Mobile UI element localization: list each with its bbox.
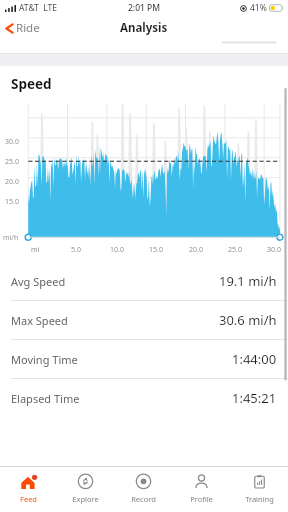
staticText: 15.0 (149, 245, 163, 255)
button[interactable]: Profile (172, 467, 230, 512)
staticText: Training (245, 494, 274, 504)
button[interactable]: Explore (57, 467, 114, 512)
staticText: 30.6 mi/h (219, 311, 277, 329)
staticText: Analysis (120, 20, 168, 36)
staticText: Record (131, 494, 156, 504)
staticText: Profile (190, 494, 213, 504)
staticText: Elapsed Time (11, 391, 80, 406)
staticText: Avg Speed (11, 274, 66, 289)
button[interactable]: Ride (0, 17, 48, 39)
staticText: Moving Time (11, 352, 78, 367)
button[interactable]: Record (114, 467, 172, 512)
staticText: Feed (20, 494, 37, 504)
staticText: 30.0 (5, 137, 19, 147)
staticText: 20.0 (5, 177, 19, 187)
button[interactable]: Moving Time (0, 340, 288, 379)
button[interactable]: Training (230, 467, 288, 512)
staticText: Explore (72, 494, 99, 504)
staticText: 15.0 (5, 197, 19, 207)
staticText: 25.0 (5, 157, 19, 167)
staticText: 5.0 (71, 245, 81, 255)
staticText: 25.0 (228, 245, 242, 255)
staticText: 1:45:21 (232, 389, 277, 407)
staticText: Speed (11, 75, 52, 93)
button[interactable]: Elapsed Time (0, 379, 288, 417)
staticText: AT&T LTE (19, 2, 57, 14)
staticText: 41% (250, 2, 267, 14)
staticText: Max Speed (11, 313, 68, 328)
button[interactable]: Feed (0, 467, 57, 512)
staticText: mi (31, 245, 40, 255)
staticText: 10.0 (110, 245, 124, 255)
staticText: mi/h (3, 233, 19, 243)
staticText: Ride (16, 20, 40, 36)
staticText: 30.0 (267, 245, 281, 255)
staticText: 1:44:00 (232, 350, 277, 368)
button[interactable]: Avg Speed (0, 262, 288, 301)
staticText: 20.0 (189, 245, 203, 255)
staticText: 19.1 mi/h (219, 272, 277, 290)
button[interactable]: Max Speed (0, 301, 288, 340)
staticText: 2:01 PM (128, 2, 161, 14)
